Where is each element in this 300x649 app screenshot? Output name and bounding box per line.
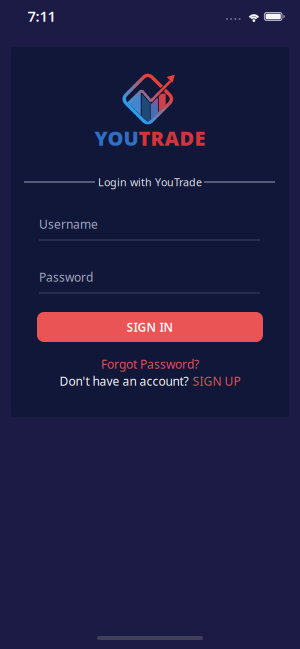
staticText: Don't have an account? <box>59 373 188 389</box>
staticText: Username <box>39 216 98 232</box>
button[interactable]: Username <box>0 0 300 649</box>
button[interactable]: SIGN IN <box>37 312 263 342</box>
staticText: Password <box>39 269 93 285</box>
button[interactable]: Don't have an account? <box>30 374 270 388</box>
staticText: Forgot Password? <box>101 356 199 372</box>
staticText: TRADE <box>138 125 205 151</box>
staticText: SIGN UP <box>192 373 240 389</box>
button[interactable]: Password <box>0 0 300 649</box>
staticText: 7:11 <box>27 6 55 26</box>
staticText: YOU <box>94 125 138 151</box>
staticText: SIGN IN <box>126 319 173 335</box>
button[interactable]: Forgot Password? <box>70 357 230 371</box>
staticText: Login with YouTrade <box>98 175 202 189</box>
